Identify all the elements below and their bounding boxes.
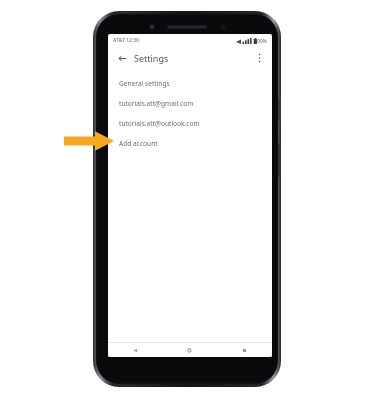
- button[interactable]: Back: [108, 343, 162, 357]
- button[interactable]: More options: [251, 50, 267, 66]
- staticText: 100%: [255, 38, 267, 44]
- staticText: Settings: [134, 52, 169, 64]
- staticText: AT&T 12:30: [113, 37, 139, 44]
- other: Pointer to Add account: [64, 130, 114, 152]
- button[interactable]: tutorials.att@outlook.com: [108, 113, 272, 133]
- staticText: tutorials.att@outlook.com: [119, 119, 200, 128]
- button[interactable]: Home: [162, 343, 217, 357]
- button[interactable]: Add account: [108, 133, 272, 153]
- button[interactable]: General settings: [108, 73, 272, 93]
- staticText: Add account: [119, 139, 158, 148]
- staticText: General settings: [119, 79, 170, 88]
- button[interactable]: Back: [114, 50, 130, 66]
- staticText: tutorials.att@gmail.com: [119, 99, 194, 108]
- button[interactable]: tutorials.att@gmail.com: [108, 93, 272, 113]
- button[interactable]: Recent apps: [217, 343, 272, 357]
